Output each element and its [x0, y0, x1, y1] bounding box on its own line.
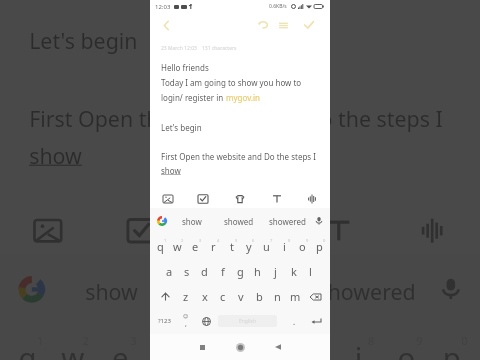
staticText: 2 [181, 238, 184, 243]
staticText: 131 characters [202, 45, 237, 52]
staticText: Let's begin [161, 122, 202, 133]
button[interactable]: Note text [150, 40, 330, 188]
button[interactable]: l [302, 259, 319, 284]
button[interactable]: a [161, 259, 178, 284]
staticText: showered [317, 276, 416, 305]
staticText: q [157, 239, 164, 254]
staticText: English [239, 318, 257, 325]
button[interactable]: Back [267, 336, 289, 358]
staticText: x [202, 289, 208, 304]
button[interactable]: 0 [311, 234, 328, 259]
button[interactable]: Backspace [304, 284, 326, 309]
button[interactable]: Space [218, 315, 277, 327]
button[interactable]: n [268, 284, 286, 309]
staticText: showered [269, 216, 306, 227]
staticText: First Open the website and Do the steps … [161, 151, 316, 162]
staticText: login/ register in [161, 92, 226, 103]
button[interactable]: z [176, 284, 195, 309]
button[interactable]: More options [271, 13, 295, 37]
button[interactable]: j [267, 259, 284, 284]
button[interactable]: v [232, 284, 250, 309]
button[interactable]: 8 [276, 234, 293, 259]
staticText: showed [197, 276, 277, 305]
button[interactable]: . [284, 309, 304, 333]
button[interactable]: b [250, 284, 268, 309]
staticText: a [166, 264, 173, 279]
button[interactable]: 3 [187, 234, 204, 259]
staticText: Let's begin [29, 25, 138, 55]
staticText: Today I am going to show you how to [161, 77, 302, 88]
staticText: show [29, 140, 82, 169]
staticText: m [290, 289, 301, 304]
button[interactable]: d [196, 259, 213, 284]
button[interactable]: Home [229, 336, 251, 358]
button[interactable]: Back [154, 13, 178, 37]
staticText: Hello friends [161, 62, 209, 73]
staticText: 8 [288, 238, 291, 243]
staticText: 1 [164, 238, 167, 243]
button[interactable]: Checklist [193, 189, 213, 209]
staticText: 23 March 12:03 [161, 45, 197, 52]
button[interactable]: f [214, 259, 231, 284]
button[interactable]: 5 [223, 234, 240, 259]
button[interactable]: Voice input [302, 189, 322, 209]
staticText: 6 [252, 238, 255, 243]
button[interactable]: Enter [304, 309, 328, 333]
staticText: 4 [217, 238, 220, 243]
button[interactable]: Insert image [158, 189, 178, 209]
staticText: z [183, 289, 189, 304]
staticText: t [230, 239, 234, 254]
button[interactable]: 7 [258, 234, 275, 259]
button[interactable]: c [214, 284, 232, 309]
button[interactable]: g [232, 259, 249, 284]
staticText: e [192, 239, 199, 254]
staticText: 5 [235, 238, 238, 243]
staticText: c [220, 289, 226, 304]
button[interactable]: Voice typing [313, 215, 325, 227]
staticText: 3 [199, 238, 202, 243]
button[interactable]: Recents [191, 336, 213, 358]
staticText: 12:03 [155, 3, 171, 11]
staticText: q [18, 337, 37, 360]
button[interactable]: ?123 [152, 309, 176, 333]
button[interactable]: 9 [294, 234, 311, 259]
button[interactable]: ☺ [176, 309, 196, 333]
button[interactable]: 4 [205, 234, 222, 259]
button[interactable]: s [178, 259, 195, 284]
button[interactable]: Undo [251, 13, 275, 37]
button[interactable]: x [195, 284, 214, 309]
staticText: d [201, 264, 208, 279]
staticText: 7 [270, 238, 273, 243]
button[interactable]: show [172, 208, 212, 234]
button[interactable]: Text format [267, 189, 287, 209]
button[interactable]: Save [297, 13, 321, 37]
staticText: r [211, 239, 216, 254]
staticText: . [293, 316, 296, 327]
button[interactable]: Shift [154, 284, 176, 309]
staticText: g [237, 264, 244, 279]
staticText: y [246, 239, 252, 254]
button[interactable]: showered [263, 208, 311, 234]
button[interactable]: Change language [196, 309, 216, 333]
button[interactable]: Style [230, 189, 250, 209]
staticText: mygov.in [226, 92, 261, 103]
button[interactable]: 1 [152, 234, 169, 259]
staticText: p [316, 239, 323, 254]
button[interactable]: 6 [240, 234, 257, 259]
button[interactable]: m [286, 284, 304, 309]
button[interactable]: showed [217, 208, 261, 234]
button[interactable]: 2 [169, 234, 186, 259]
staticText: v [238, 289, 244, 304]
button[interactable]: k [285, 259, 302, 284]
button[interactable]: h [249, 259, 266, 284]
staticText: First Open the website and Do the steps … [29, 103, 443, 132]
staticText: p [443, 337, 461, 360]
